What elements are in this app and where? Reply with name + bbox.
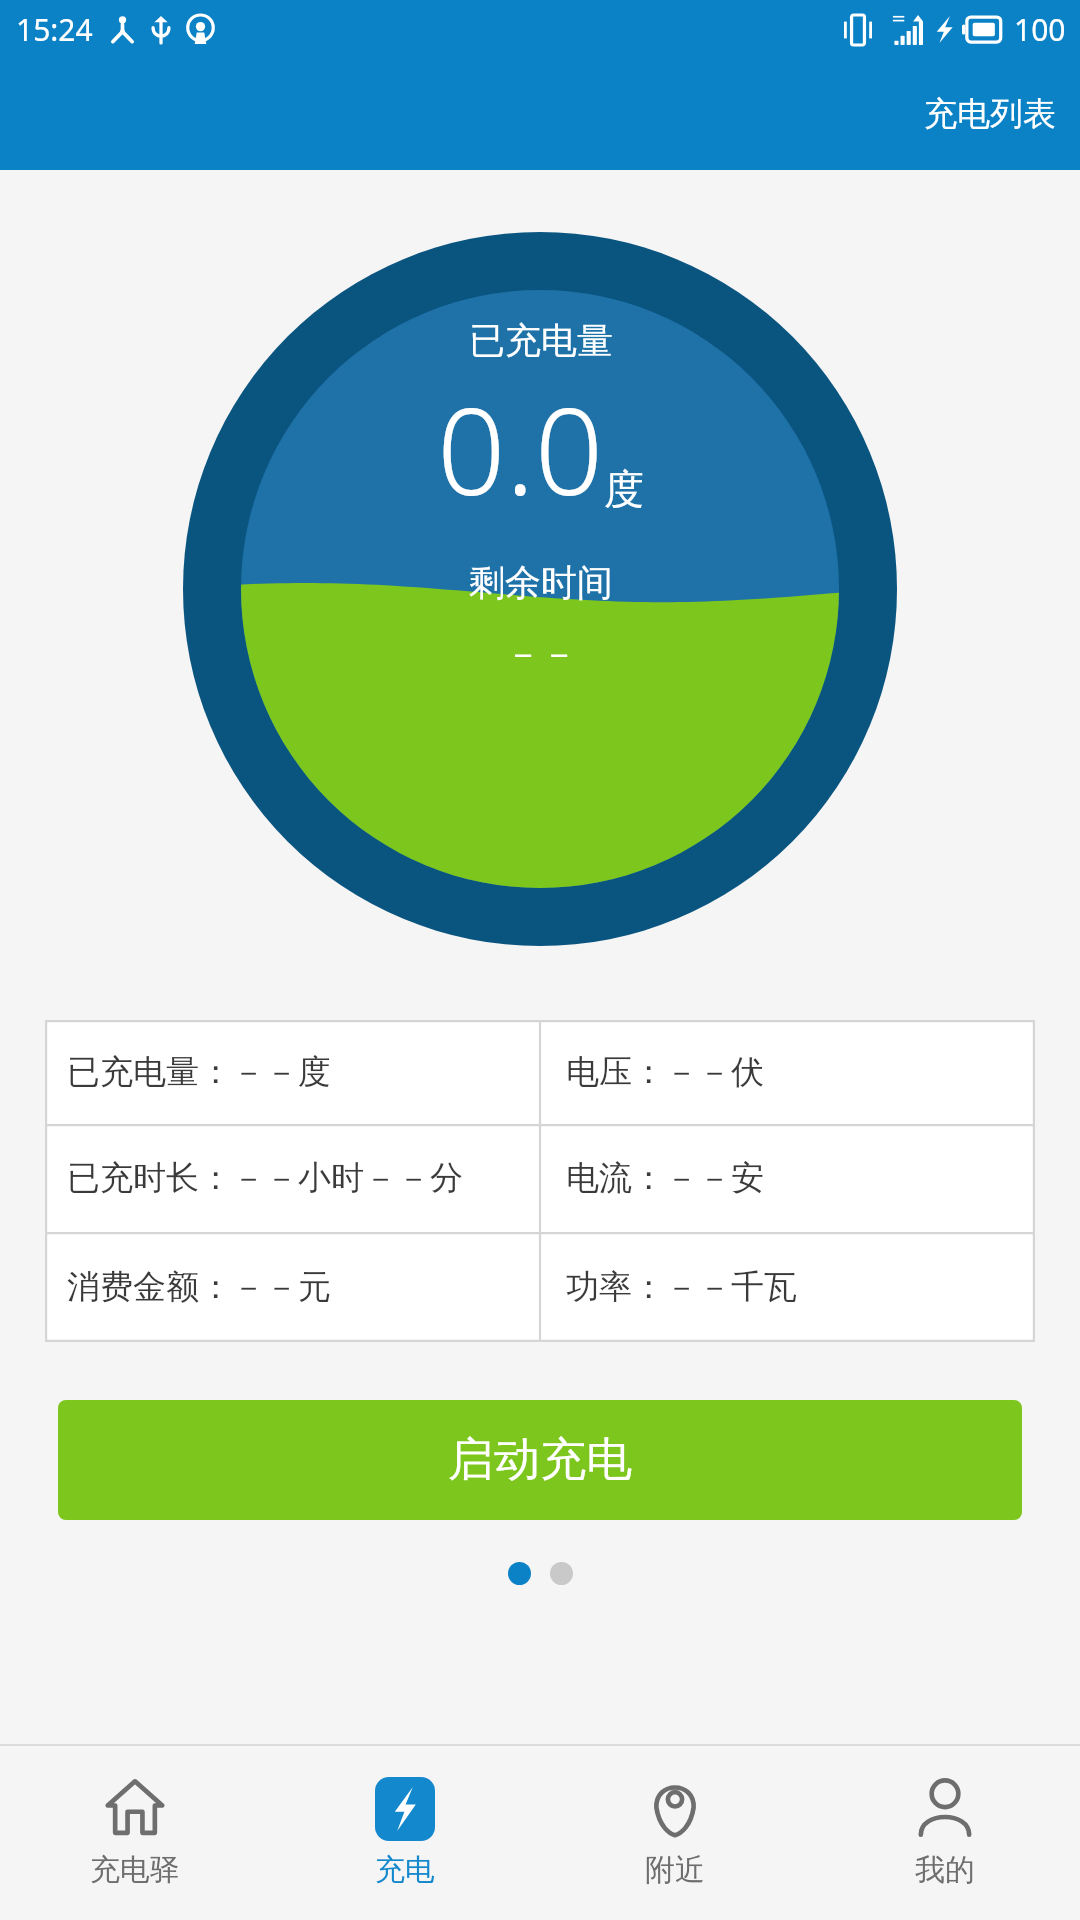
staticText: 电压：－－伏 bbox=[566, 1051, 764, 1093]
staticText: 电流：－－安 bbox=[566, 1157, 764, 1199]
button[interactable]: 消费金额：－－元 bbox=[45, 1232, 540, 1342]
button[interactable]: 电流：－－安 bbox=[540, 1124, 1035, 1232]
button[interactable]: 附近 bbox=[540, 1746, 810, 1920]
staticText: 已充电量：－－度 bbox=[67, 1051, 331, 1093]
staticText: 已充电量 bbox=[469, 318, 613, 363]
staticText: 功率：－－千瓦 bbox=[566, 1266, 797, 1308]
staticText: 剩余时间 bbox=[469, 560, 613, 605]
button[interactable]: 充电驿 bbox=[0, 1746, 270, 1920]
staticText: 附近 bbox=[645, 1851, 705, 1889]
staticText: 0.0 bbox=[437, 367, 604, 530]
staticText: 已充时长：－－小时－－分 bbox=[67, 1157, 463, 1199]
staticText: 消费金额：－－元 bbox=[67, 1266, 331, 1308]
button[interactable]: 已充时长：－－小时－－分 bbox=[45, 1124, 540, 1232]
button[interactable]: 我的 bbox=[810, 1746, 1080, 1920]
staticText: －－ bbox=[505, 631, 577, 676]
staticText: 充电 bbox=[375, 1851, 435, 1889]
button[interactable]: 已充电量：－－度 bbox=[45, 1020, 540, 1124]
staticText: 度 bbox=[604, 464, 644, 514]
staticText: 15:24 bbox=[16, 9, 93, 50]
staticText: 100 bbox=[1014, 9, 1066, 50]
staticText: 充电列表 bbox=[924, 93, 1056, 135]
button[interactable]: 充电 bbox=[270, 1746, 540, 1920]
button[interactable]: 功率：－－千瓦 bbox=[540, 1232, 1035, 1342]
staticText: 我的 bbox=[915, 1851, 975, 1889]
button[interactable]: 启动充电 bbox=[58, 1400, 1022, 1520]
button[interactable]: 电压：－－伏 bbox=[540, 1020, 1035, 1124]
button[interactable]: 充电列表 bbox=[900, 77, 1080, 151]
staticText: 充电驿 bbox=[90, 1851, 180, 1889]
staticText: 启动充电 bbox=[448, 1431, 632, 1489]
